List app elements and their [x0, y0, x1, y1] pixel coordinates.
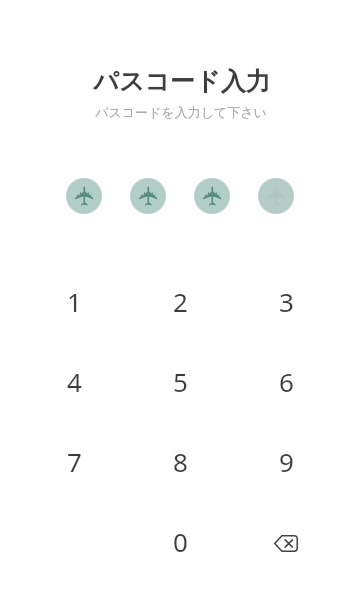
staticText: 4 [67, 364, 82, 399]
button[interactable]: 3 [233, 261, 339, 341]
staticText: 6 [279, 364, 294, 399]
staticText: 8 [173, 444, 188, 479]
staticText: 9 [279, 444, 294, 479]
button[interactable]: 5 [127, 341, 233, 421]
button[interactable]: 2 [127, 261, 233, 341]
other: Backspace [266, 521, 306, 561]
button[interactable]: 9 [233, 421, 339, 501]
staticText: 7 [67, 444, 82, 479]
staticText: パスコード入力 [93, 66, 271, 97]
staticText: ✈ [197, 184, 228, 207]
staticText: 1 [67, 284, 82, 319]
staticText: 3 [279, 284, 294, 319]
staticText: ✈ [261, 184, 292, 207]
staticText: ✈ [133, 184, 164, 207]
staticText: 5 [173, 364, 188, 399]
button[interactable]: 8 [127, 421, 233, 501]
button[interactable]: 0 [127, 501, 233, 581]
button[interactable]: 6 [233, 341, 339, 421]
button[interactable]: 4 [21, 341, 127, 421]
staticText: 0 [173, 524, 188, 559]
button[interactable]: 1 [21, 261, 127, 341]
button[interactable]: 7 [21, 421, 127, 501]
staticText: ✈ [69, 184, 100, 207]
staticText: パスコードを入力して下さい [95, 104, 267, 120]
button[interactable]: Backspace [233, 501, 339, 581]
staticText: 2 [173, 284, 188, 319]
